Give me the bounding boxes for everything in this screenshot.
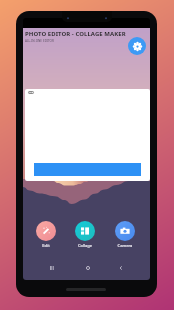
button[interactable]: Recents	[47, 263, 57, 273]
staticText: Collage	[68, 243, 102, 248]
staticText: Camera	[108, 243, 142, 248]
staticText: Ad	[29, 91, 33, 94]
button[interactable]: Camera	[108, 221, 142, 248]
button[interactable]: Settings	[128, 37, 146, 55]
staticText: Edit	[29, 243, 63, 248]
button[interactable]: Edit	[29, 221, 63, 248]
staticText: PHOTO EDITOR - COLLAGE MAKER	[25, 30, 126, 38]
button[interactable]: Collage	[68, 221, 102, 248]
button[interactable]: Home	[83, 263, 93, 273]
staticText: ALL-IN-ONE EDITOR	[25, 39, 54, 43]
button[interactable]: Back	[116, 263, 126, 273]
